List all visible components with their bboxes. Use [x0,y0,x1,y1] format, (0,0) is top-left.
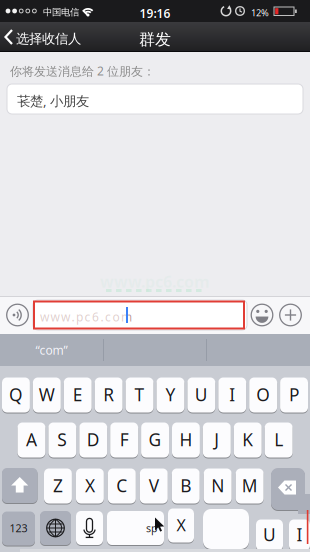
staticText: I [296,523,302,546]
button[interactable]: E [64,377,92,413]
button[interactable]: I [289,519,310,551]
button[interactable]: 123 [2,511,35,546]
button[interactable]: W [33,377,61,413]
staticText: C [116,474,127,497]
staticText: Q [9,383,23,406]
button[interactable]: T [126,377,153,413]
button[interactable]: Y [156,377,184,413]
button[interactable]: K [234,422,262,458]
staticText: K [242,428,253,451]
staticText: W [39,383,55,406]
button[interactable]: 听写 [76,511,103,546]
staticText: F [120,428,129,451]
button[interactable]: B [172,468,200,504]
staticText: X [176,514,185,536]
staticText: L [274,428,283,451]
staticText: 中国电信 [43,6,79,18]
button[interactable]: P [280,377,308,413]
staticText: J [214,428,219,451]
button[interactable]: U [187,377,215,413]
button[interactable]: 建议 2 [0,334,103,366]
button[interactable]: X [168,508,194,543]
staticText: M [242,474,258,497]
button[interactable]: H [172,422,200,458]
staticText: U [195,383,208,406]
button[interactable]: Shift [2,468,37,504]
staticText: sp [146,521,158,535]
button[interactable]: 空白键 [203,509,249,550]
staticText: G [148,428,161,451]
staticText: V [149,474,159,497]
staticText: U [263,523,276,546]
button[interactable]: 更多功能 [0,296,28,328]
staticText: 群发 [139,29,171,49]
staticText: X [85,474,95,497]
button[interactable]: I [218,377,246,413]
button[interactable]: D [79,422,107,458]
staticText: O [256,383,270,406]
staticText: H [179,428,192,451]
staticText: Z [53,474,63,497]
button[interactable]: V [140,468,168,504]
button[interactable]: M [236,468,264,504]
button[interactable]: S [48,422,76,458]
button[interactable]: 下一个键盘 [40,511,71,546]
staticText: 123 [9,521,27,535]
staticText: S [57,428,67,451]
button[interactable]: J [203,422,231,458]
button[interactable]: X [76,468,104,504]
button[interactable]: 表情 [0,296,28,328]
staticText: “com” [35,342,67,358]
button[interactable]: R [95,377,123,413]
staticText: A [26,428,37,451]
staticText: P [289,383,299,406]
staticText: D [87,428,100,451]
button[interactable]: A [17,422,45,458]
staticText: B [180,474,191,497]
staticText: E [73,383,83,406]
button[interactable]: 切换到语音输入 [0,296,28,328]
button[interactable]: Z [44,468,72,504]
button[interactable]: N [204,468,232,504]
staticText: www.pc6.com [40,309,132,325]
staticText [203,509,209,539]
button[interactable]: F [110,422,138,458]
button[interactable]: 建议 3 [0,334,103,366]
staticText: 苌楚, 小朋友 [17,92,89,110]
staticText: I [229,383,235,406]
button[interactable]: Q [2,377,30,413]
staticText: 选择收信人 [16,30,81,47]
staticText: Y [165,383,175,406]
button[interactable]: O [249,377,277,413]
staticText: R [103,383,114,406]
staticText: 19:16 [139,5,170,21]
button[interactable]: “com” [0,334,103,366]
staticText: www.pc6.com [100,271,210,292]
button[interactable]: L [265,422,293,458]
button[interactable]: U [256,519,283,551]
button[interactable]: Delete [271,468,305,511]
staticText: 你将发送消息给 2 位朋友： [10,63,155,79]
button[interactable]: 文本输入框 [0,296,214,326]
staticText: 12% [251,6,269,19]
button[interactable]: C [108,468,136,504]
button[interactable]: 空格 [107,511,165,546]
staticText: N [211,474,224,497]
button[interactable]: G [141,422,169,458]
staticText: T [134,383,144,406]
button[interactable]: 返回 选择收信人 [0,22,90,52]
